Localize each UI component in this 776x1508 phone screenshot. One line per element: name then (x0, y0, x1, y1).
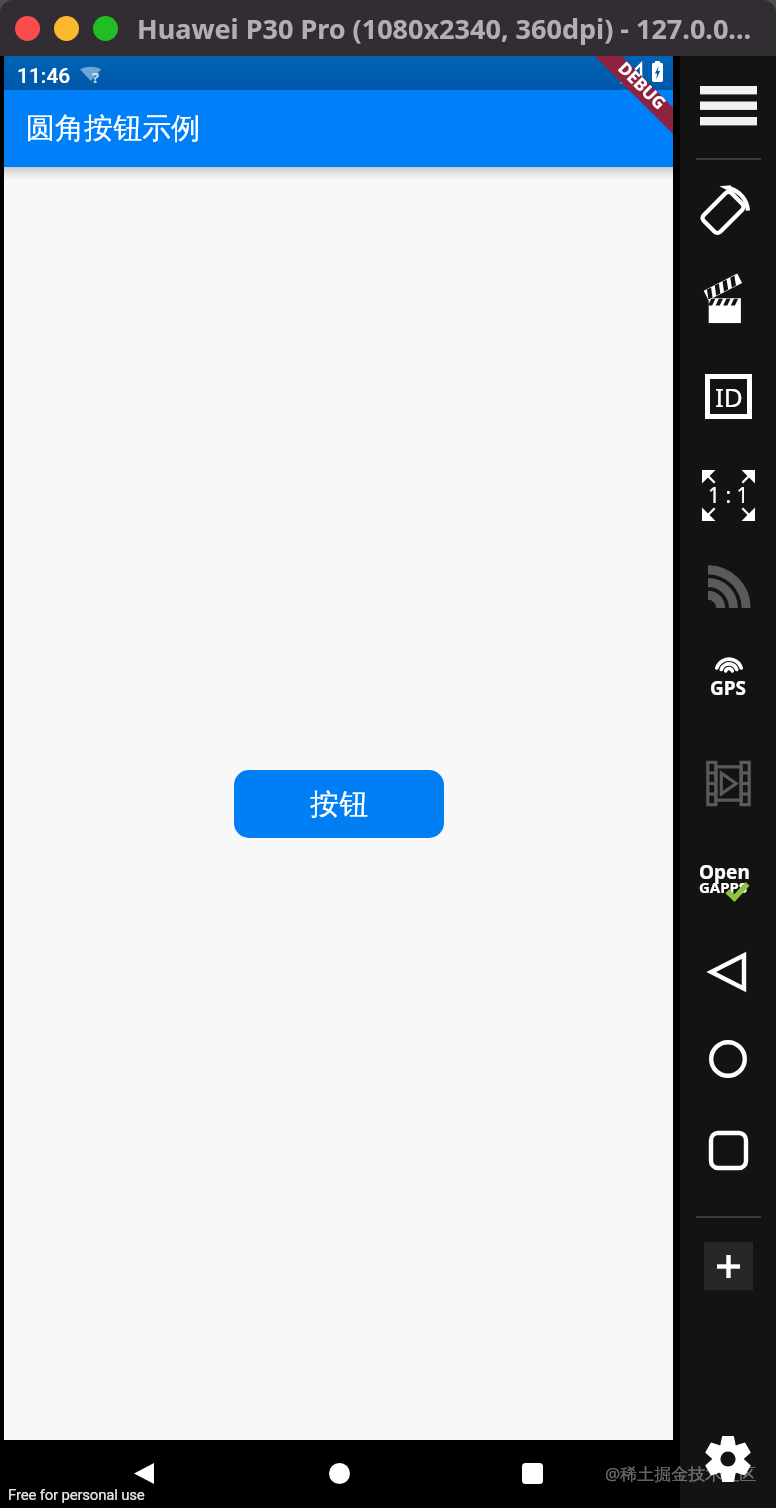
staticText: Huawei P30 Pro (1080x2340, 360dpi) - 127… (137, 10, 752, 47)
button[interactable]: Back (120, 1449, 168, 1497)
button[interactable]: More (680, 1224, 776, 1308)
staticText: DEBUG (613, 56, 671, 114)
button[interactable]: Recent apps (680, 1108, 776, 1192)
button[interactable]: Zoom 1 to 1 (680, 453, 776, 537)
button[interactable]: Close window (15, 16, 40, 41)
staticText: GPS (710, 675, 747, 701)
staticText: ID (715, 379, 743, 414)
staticText: 圆角按钮示例 (26, 110, 200, 147)
button[interactable]: Menu (680, 64, 776, 148)
button[interactable]: Device ID (680, 354, 776, 438)
staticText: 1 : 1 (708, 481, 749, 510)
button[interactable]: Cellular (680, 545, 776, 629)
button[interactable]: GPS location (680, 635, 776, 719)
staticText: 11:46 (17, 64, 71, 89)
button[interactable]: Back (680, 930, 776, 1014)
button[interactable]: Take screenshot (680, 259, 776, 343)
button[interactable]: Home (680, 1017, 776, 1101)
button[interactable]: 按钮 (234, 770, 444, 838)
staticText: ? (92, 67, 100, 84)
button[interactable]: Record video (680, 741, 776, 825)
button[interactable]: Settings (680, 1417, 776, 1501)
staticText: @稀土掘金技术社区 (605, 1462, 757, 1485)
staticText: Free for personal use (8, 1486, 145, 1504)
button[interactable]: Maximize window (93, 16, 118, 41)
button[interactable]: Minimize window (54, 16, 79, 41)
button[interactable]: Rotate device (680, 166, 776, 250)
button[interactable]: Recent apps (508, 1449, 556, 1497)
button[interactable]: Home (315, 1449, 363, 1497)
button[interactable]: OpenGApps (680, 839, 776, 923)
staticText: GAPPS (699, 877, 748, 897)
staticText: Open (699, 859, 750, 885)
staticText: 按钮 (310, 786, 368, 823)
